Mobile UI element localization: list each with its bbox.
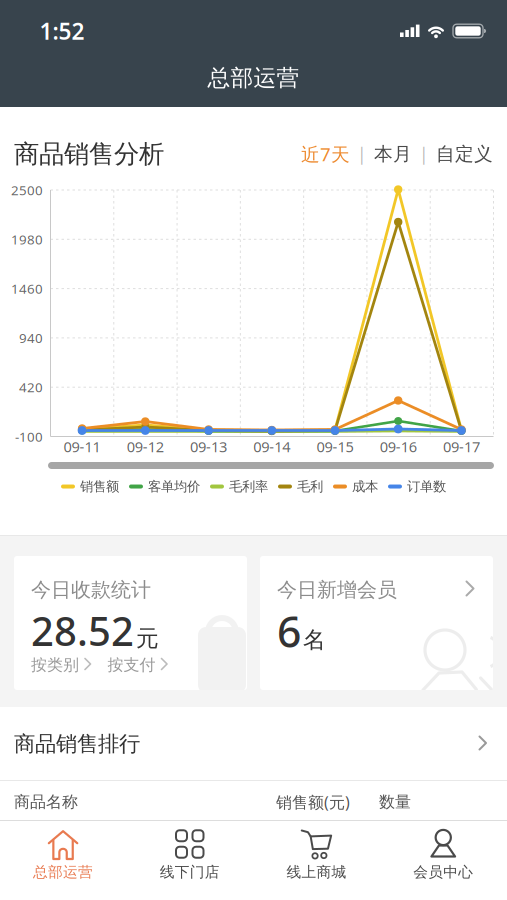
button[interactable]: 今日新增会员 bbox=[260, 556, 493, 690]
staticText: 本月 bbox=[374, 142, 412, 165]
staticText: 近7天 bbox=[301, 142, 350, 166]
staticText: 数量 bbox=[379, 792, 411, 812]
staticText: 今日新增会员 bbox=[277, 577, 397, 602]
staticText: 商品销售分析 bbox=[14, 138, 164, 169]
staticText: 会员中心 bbox=[413, 863, 473, 881]
button[interactable]: 按类别 bbox=[31, 655, 92, 675]
button[interactable]: 商品销售排行 bbox=[0, 707, 507, 780]
staticText: 09-16 bbox=[380, 437, 417, 456]
button[interactable]: 自定义 bbox=[436, 142, 493, 165]
button[interactable]: 今日收款统计 bbox=[14, 556, 247, 690]
staticText: 客单均价 bbox=[148, 478, 200, 495]
button[interactable]: 总部运营 bbox=[0, 820, 127, 900]
staticText: 09-12 bbox=[127, 437, 164, 456]
staticText: 订单数 bbox=[407, 478, 446, 495]
staticText: 6 bbox=[277, 603, 301, 659]
button[interactable]: 近7天 bbox=[301, 142, 350, 166]
staticText: 1980 bbox=[11, 230, 43, 248]
staticText: 线下门店 bbox=[160, 863, 220, 881]
staticText: 毛利率 bbox=[229, 478, 268, 495]
button[interactable]: 本月 bbox=[374, 142, 412, 165]
staticText: 09-17 bbox=[443, 437, 480, 456]
staticText: 按类别 bbox=[31, 655, 79, 675]
staticText: 商品销售排行 bbox=[14, 731, 140, 757]
staticText: 1:52 bbox=[39, 16, 84, 46]
staticText: 09-13 bbox=[190, 437, 227, 456]
staticText: | bbox=[419, 142, 429, 165]
staticText: 2500 bbox=[11, 181, 43, 199]
staticText: 成本 bbox=[352, 478, 378, 495]
staticText: 销售额 bbox=[80, 478, 119, 495]
staticText: -100 bbox=[15, 428, 43, 445]
staticText: 09-11 bbox=[64, 437, 101, 456]
staticText: 销售额(元) bbox=[276, 791, 350, 813]
staticText: 总部运营 bbox=[33, 863, 93, 881]
staticText: | bbox=[357, 142, 367, 165]
button[interactable]: 线下门店 bbox=[127, 820, 253, 900]
staticText: 按支付 bbox=[107, 655, 155, 675]
staticText: 总部运营 bbox=[207, 64, 299, 92]
button[interactable]: 线上商城 bbox=[253, 820, 380, 900]
staticText: 28.52 bbox=[31, 604, 134, 657]
button[interactable]: 按支付 bbox=[107, 655, 169, 675]
staticText: 自定义 bbox=[436, 142, 493, 165]
staticText: 09-15 bbox=[316, 437, 353, 456]
staticText: 今日收款统计 bbox=[31, 577, 151, 602]
staticText: 1460 bbox=[11, 280, 43, 297]
staticText: 元 bbox=[136, 625, 159, 652]
staticText: 420 bbox=[19, 378, 43, 396]
button[interactable]: 会员中心 bbox=[380, 820, 507, 900]
staticText: 毛利 bbox=[297, 478, 323, 495]
staticText: 940 bbox=[19, 329, 43, 347]
staticText: 09-14 bbox=[253, 437, 290, 456]
staticText: 商品名称 bbox=[14, 792, 78, 812]
staticText: 线上商城 bbox=[286, 863, 346, 881]
staticText: 名 bbox=[303, 626, 326, 654]
